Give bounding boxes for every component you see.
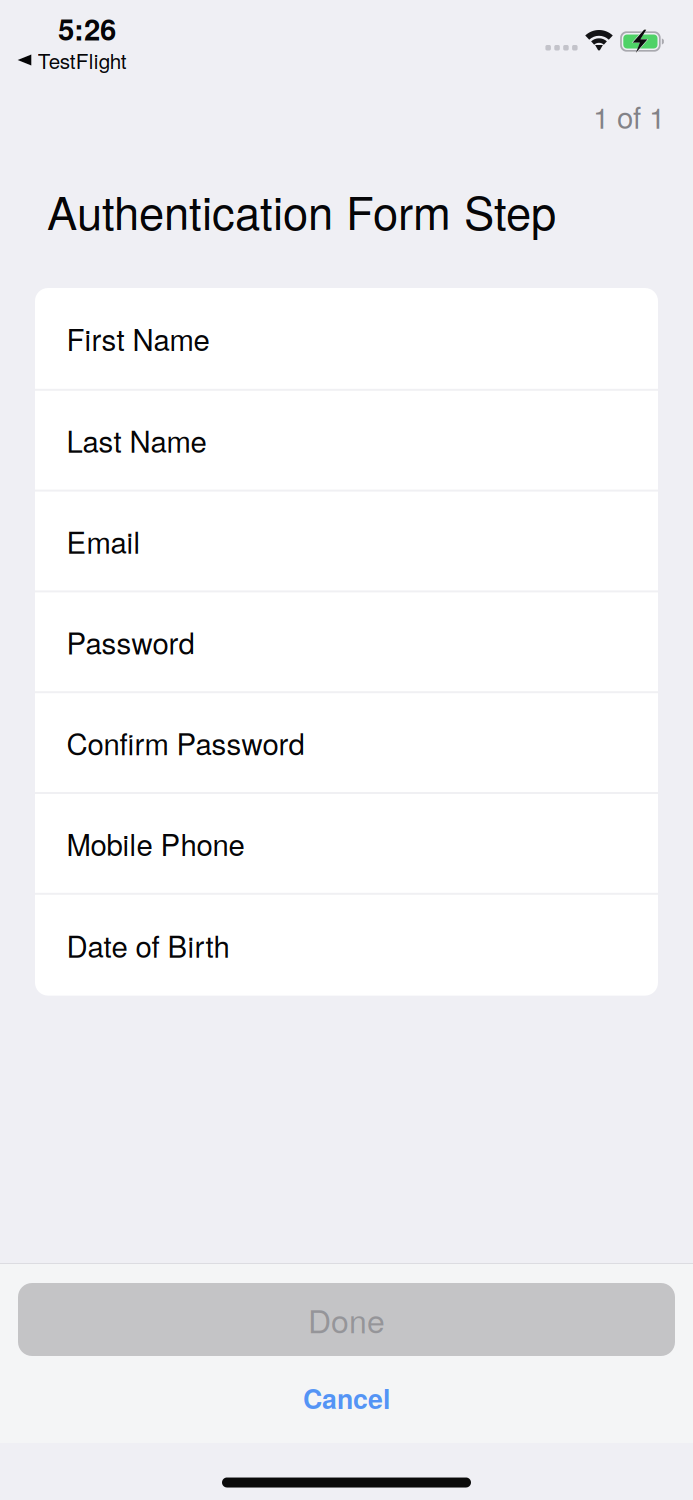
staticText: Date of Birth: [66, 924, 229, 966]
button[interactable]: Date of Birth: [35, 895, 658, 996]
staticText: 5:26: [58, 7, 116, 49]
staticText: Password: [66, 621, 194, 663]
button[interactable]: Done: [18, 1283, 675, 1356]
button[interactable]: Password: [35, 592, 658, 693]
button[interactable]: Last Name: [35, 391, 658, 492]
staticText: Done: [308, 1297, 385, 1342]
staticText: Confirm Password: [66, 722, 304, 764]
button[interactable]: Cancel: [18, 1373, 675, 1423]
staticText: Cancel: [303, 1379, 390, 1417]
button[interactable]: Confirm Password: [35, 693, 658, 794]
staticText: Mobile Phone: [66, 822, 244, 864]
button[interactable]: First Name: [35, 288, 658, 391]
staticText: TestFlight: [38, 45, 127, 75]
button[interactable]: Email: [35, 492, 658, 592]
staticText: First Name: [66, 317, 209, 359]
staticText: Authentication Form Step: [47, 178, 556, 243]
staticText: Email: [66, 520, 140, 562]
button[interactable]: Mobile Phone: [35, 794, 658, 895]
staticText: 1 of 1: [593, 95, 665, 137]
staticText: Last Name: [66, 419, 206, 461]
